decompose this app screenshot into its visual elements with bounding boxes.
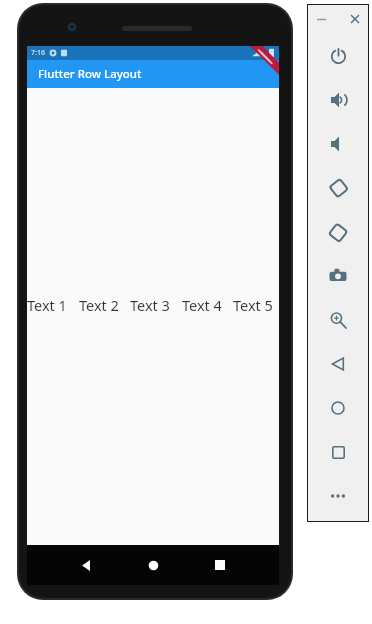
staticText: 7:16 xyxy=(31,48,45,58)
button[interactable]: Back xyxy=(307,342,369,386)
staticText: Flutter Row Layout xyxy=(38,66,142,82)
staticText: Text 3 xyxy=(130,295,170,315)
button[interactable]: Home xyxy=(140,552,166,578)
button[interactable]: Text 3 xyxy=(130,295,176,315)
button[interactable]: Screenshot xyxy=(307,254,369,298)
button[interactable]: Volume down xyxy=(307,122,369,166)
button[interactable]: Minimize xyxy=(311,9,331,29)
button[interactable]: Text 4 xyxy=(182,295,228,315)
button[interactable]: Text 2 xyxy=(79,295,125,315)
button[interactable]: Flutter Row Layout xyxy=(27,60,279,88)
button[interactable]: Power xyxy=(307,34,369,78)
button[interactable]: Overview xyxy=(307,430,369,474)
button[interactable]: Back xyxy=(73,552,99,578)
button[interactable]: Text 5 xyxy=(233,295,279,315)
button[interactable]: Home xyxy=(307,386,369,430)
staticText: Text 4 xyxy=(182,295,222,315)
button[interactable]: Volume up xyxy=(307,78,369,122)
staticText: Text 5 xyxy=(233,295,273,315)
button[interactable]: Rotate right xyxy=(307,210,369,254)
button[interactable]: Close xyxy=(345,9,365,29)
button[interactable]: Rotate left xyxy=(307,166,369,210)
button[interactable]: Text 1 xyxy=(27,295,73,315)
staticText: Text 1 xyxy=(27,295,67,315)
button[interactable]: Recent apps xyxy=(207,552,233,578)
button[interactable]: Zoom xyxy=(307,298,369,342)
button[interactable]: More xyxy=(307,474,369,518)
staticText: Text 2 xyxy=(79,295,119,315)
